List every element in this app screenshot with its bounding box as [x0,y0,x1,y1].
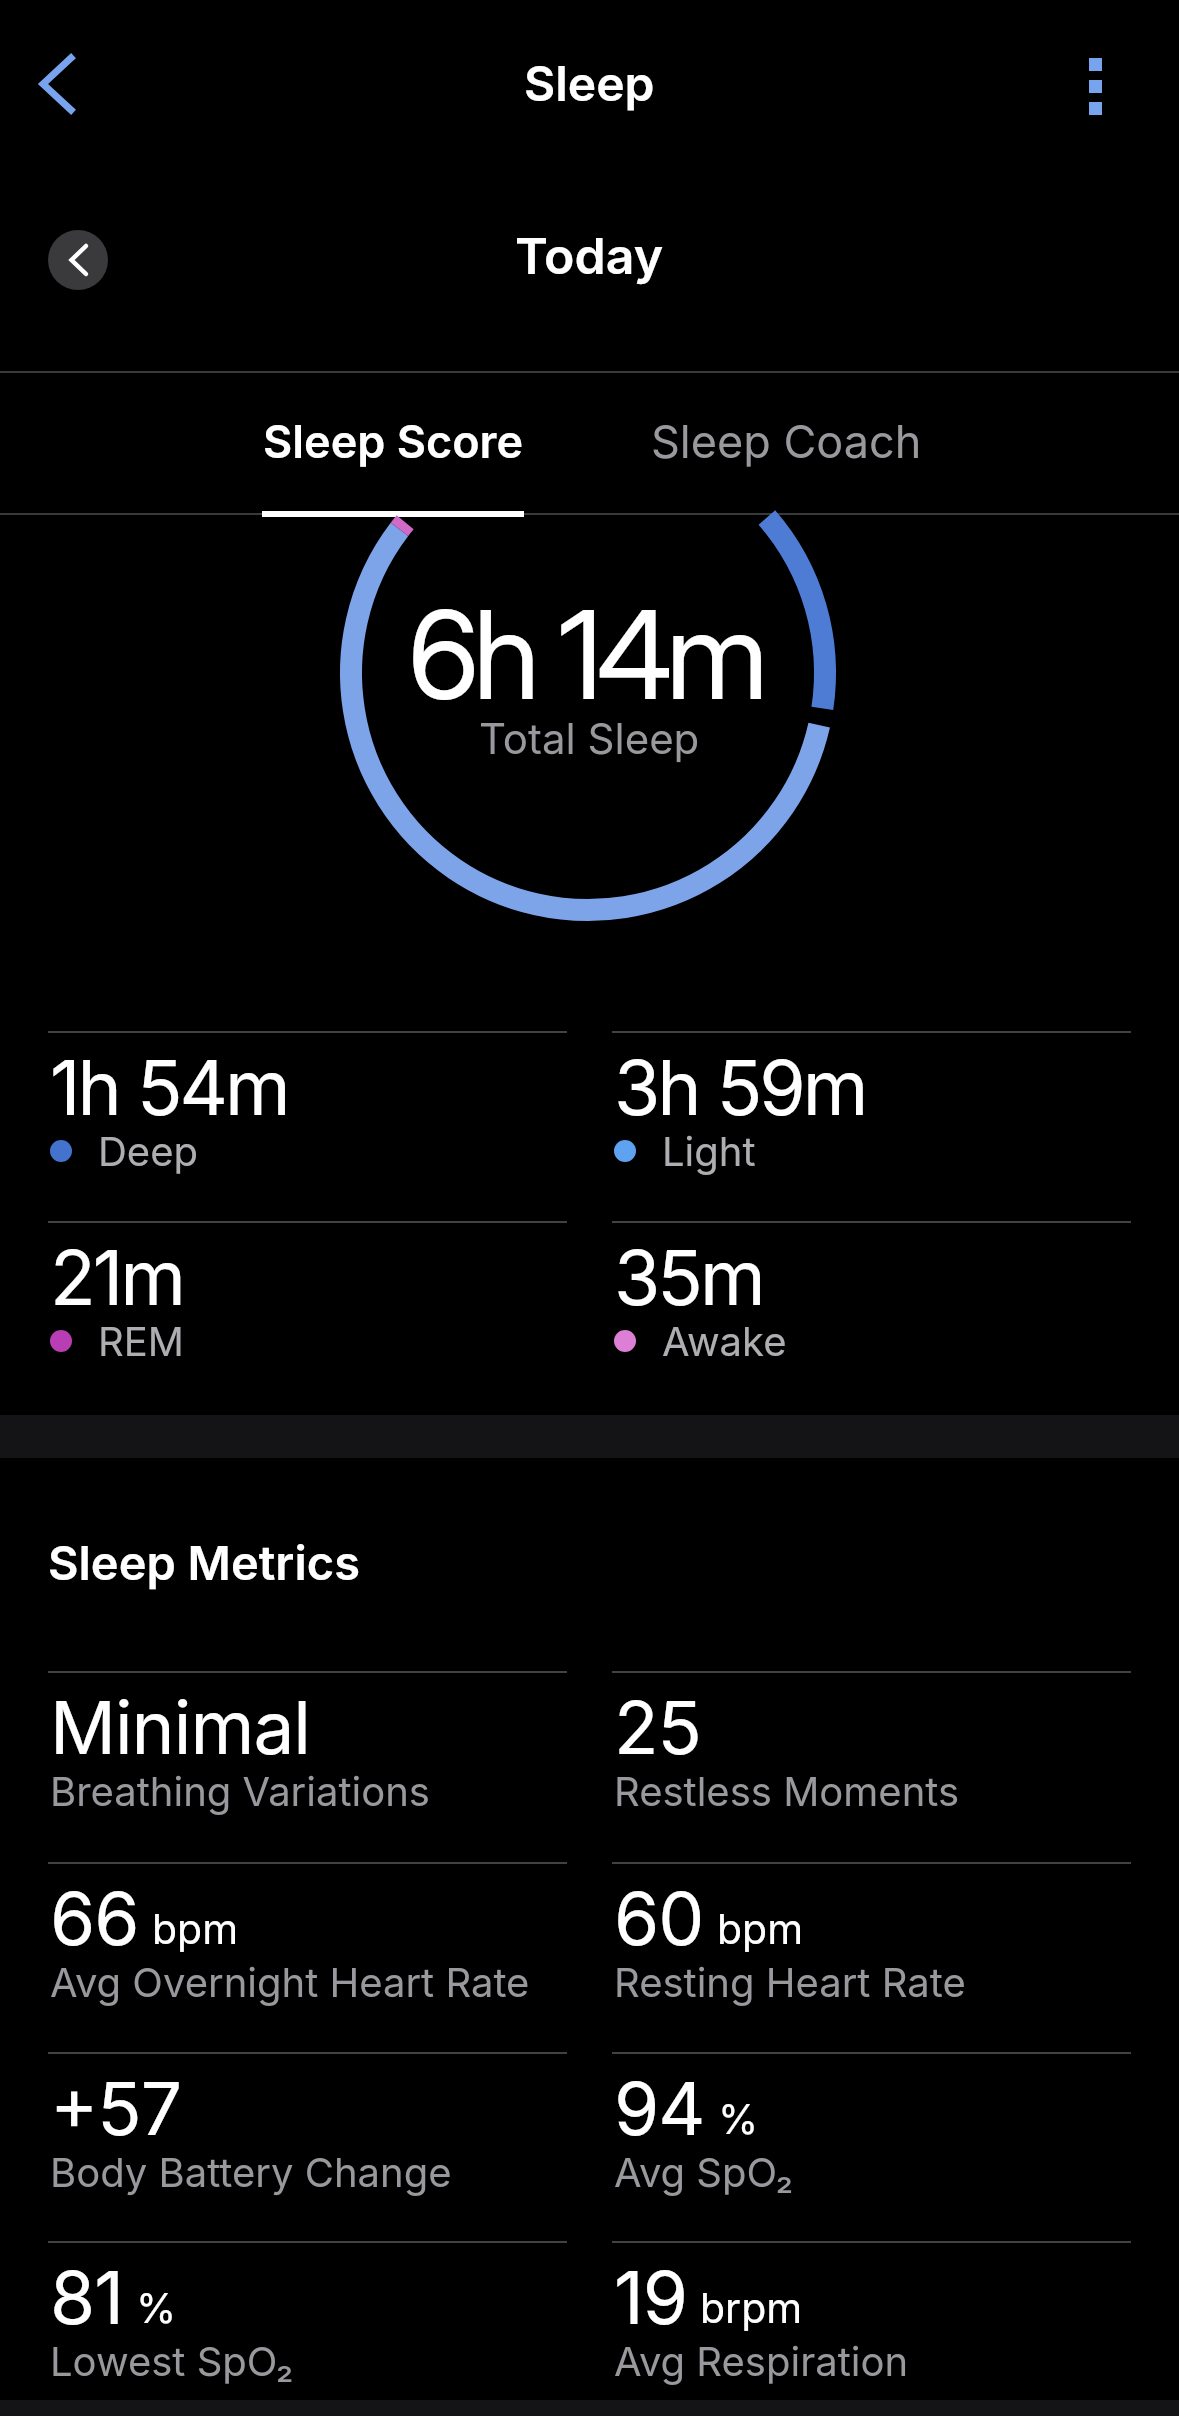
button[interactable]: Sleep Coach [611,370,961,511]
button[interactable] [1070,44,1120,128]
staticText: Sleep [524,54,655,112]
staticText: bpm [152,1904,239,1954]
staticText: Total Sleep [479,713,700,764]
staticText: 1h 54m [50,1042,288,1133]
staticText: bpm [717,1904,804,1954]
button[interactable]: Sleep Score [262,370,524,511]
staticText: Sleep Coach [651,414,922,468]
staticText: Avg Respiration [614,2337,909,2385]
staticText: % [136,2283,177,2333]
staticText: Sleep Metrics [48,1534,360,1591]
staticText: 19 [614,2253,687,2341]
staticText: Sleep Score [263,414,524,468]
staticText: % [718,2094,759,2144]
staticText: Lowest SpO₂ [50,2337,294,2385]
staticText: Minimal [50,1683,311,1771]
staticText: Deep [98,1127,198,1175]
staticText: Today [515,226,664,286]
staticText: 81 [50,2253,123,2341]
staticText: Light [662,1127,756,1175]
staticText: REM [98,1317,184,1365]
button[interactable] [20,48,92,120]
staticText: 21m [50,1232,183,1323]
staticText: 60 [614,1874,704,1962]
staticText: Awake [662,1317,787,1365]
staticText: Avg SpO₂ [614,2148,794,2196]
staticText: 25 [614,1683,701,1771]
button[interactable] [48,230,108,290]
staticText: 3h 59m [614,1042,866,1133]
staticText: Resting Heart Rate [614,1958,966,2006]
staticText: 35m [614,1232,763,1323]
staticText: Restless Moments [614,1767,960,1815]
staticText: brpm [700,2283,803,2333]
staticText: Avg Overnight Heart Rate [50,1958,530,2006]
staticText: 6h 14m [408,581,763,729]
staticText: Breathing Variations [50,1767,430,1815]
staticText: 94 [614,2064,705,2152]
staticText: Body Battery Change [50,2148,452,2196]
staticText: +57 [50,2064,181,2152]
staticText: 66 [50,1874,139,1962]
